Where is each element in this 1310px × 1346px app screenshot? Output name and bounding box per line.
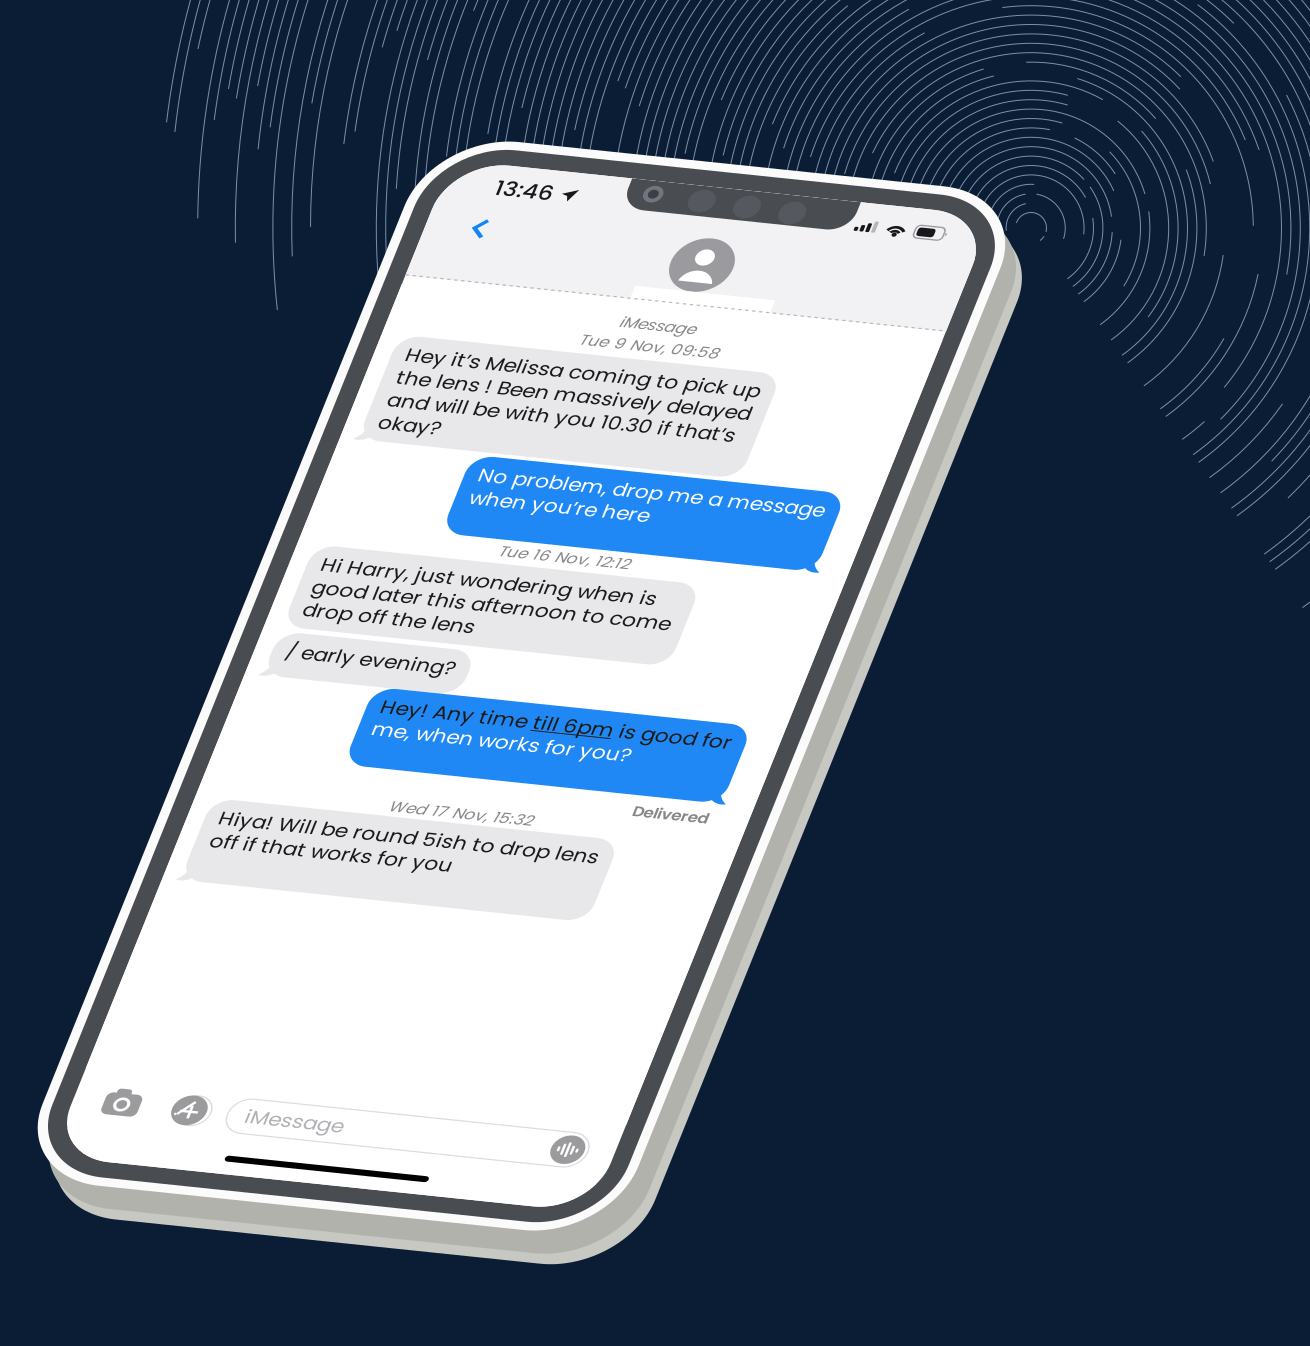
- staticText: the lens ! Been massively delayed: [42, 191, 298, 212]
- staticText: me, when works for you?: [123, 479, 310, 500]
- staticText: Hey! Any time till 6pm is good for: [123, 460, 376, 481]
- staticText: Hey it’s Melissa coming to pick up: [42, 172, 298, 193]
- button[interactable]: iMessage: [131, 800, 391, 829]
- staticText: iMessage: [182, 129, 237, 146]
- staticText: iMessage: [144, 804, 215, 826]
- staticText: Hiya! Will be round 5ish to drop lens: [42, 564, 316, 585]
- staticText: Tue 9 Nov, 09:58: [159, 147, 260, 164]
- staticText: and will be with you 10.30 if that’s: [42, 210, 293, 231]
- staticText: No problem, drop me a message: [126, 263, 376, 284]
